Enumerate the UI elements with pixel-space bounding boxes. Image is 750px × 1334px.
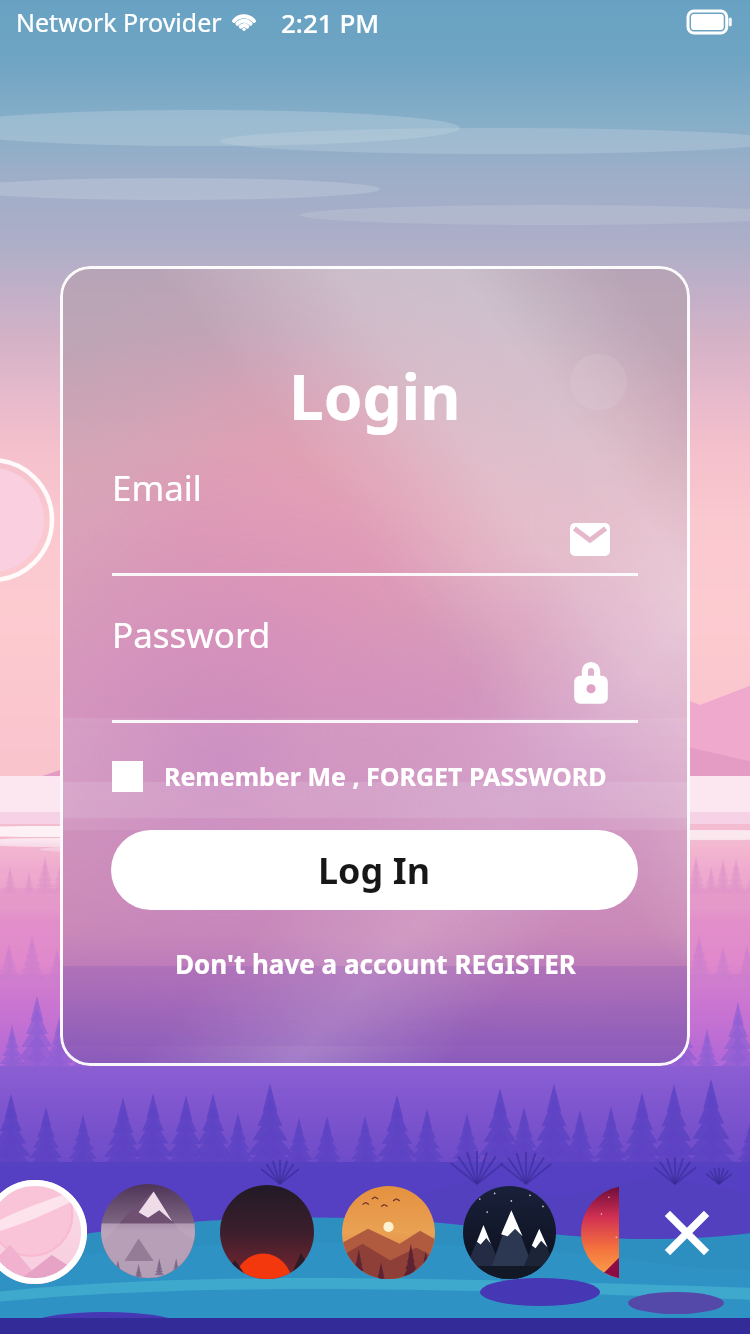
other: Selected wallpaper [0,1180,87,1284]
staticText: Password [112,611,271,659]
button[interactable]: Wallpaper snowy mountain [463,1186,556,1279]
other: Email [570,523,610,556]
button[interactable]: Wallpaper sunset [342,1186,435,1279]
button[interactable]: Log In [111,830,638,910]
button[interactable]: Remember Me , FORGET PASSWORD [112,752,607,800]
staticText: Remember Me , FORGET PASSWORD [164,759,607,793]
button[interactable]: Wallpaper desert night [581,1186,619,1279]
staticText: Login [289,354,461,438]
other: Password [571,659,611,707]
button[interactable]: Wallpaper planet [0,1180,87,1284]
button[interactable]: Wallpaper sunrise [220,1185,314,1279]
button[interactable]: Close [651,1197,723,1269]
staticText: Email [112,464,202,512]
staticText: Network Provider [16,5,222,39]
button[interactable]: Wallpaper misty mountains [101,1184,195,1278]
staticText: Log In [318,846,431,895]
staticText: 2:21 PM [281,5,380,40]
button[interactable]: Don't have a account REGISTER [175,946,576,981]
